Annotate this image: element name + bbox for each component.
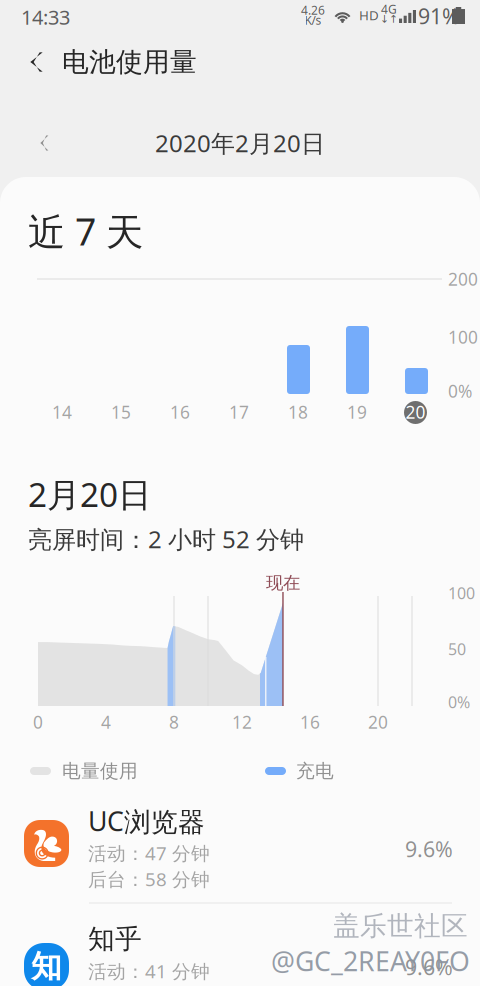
staticText: 后台：58 分钟 xyxy=(88,867,210,891)
staticText: 电量使用 xyxy=(62,759,138,782)
staticText: 12 xyxy=(232,710,252,733)
staticText: UC浏览器 xyxy=(88,803,205,839)
staticText: 9.6% xyxy=(405,953,453,981)
staticText: 近 7 天 xyxy=(28,206,143,256)
staticText: 亮屏时间：2 小时 52 分钟 xyxy=(28,523,304,555)
staticText: 现在 xyxy=(266,572,300,594)
button[interactable]: UC浏览器 xyxy=(0,805,480,905)
staticText: 50 xyxy=(448,638,466,660)
staticText: K/s xyxy=(304,12,321,28)
staticText: 0 xyxy=(33,710,43,733)
staticText: 活动：47 分钟 xyxy=(88,841,210,865)
staticText: 知乎 xyxy=(88,923,142,955)
staticText: 20 xyxy=(405,400,425,423)
staticText: 100 xyxy=(448,582,475,604)
staticText: 16 xyxy=(300,710,320,733)
staticText: HD xyxy=(359,6,379,24)
staticText: 2月20日 xyxy=(28,472,151,516)
staticText: 18 xyxy=(288,400,308,423)
staticText: ↓↑ xyxy=(380,13,398,25)
staticText: 电池使用量 xyxy=(62,46,197,78)
staticText: 4 xyxy=(101,710,111,733)
button[interactable]: 知 xyxy=(0,923,480,986)
staticText: 15 xyxy=(111,400,131,423)
button[interactable]: Previous day xyxy=(0,0,48,44)
staticText: 充电 xyxy=(296,759,334,782)
staticText: 活动：41 分钟 xyxy=(88,959,210,983)
staticText: 19 xyxy=(347,400,367,423)
staticText: @GC_2REAY0FO xyxy=(271,943,470,979)
staticText: 8 xyxy=(169,710,179,733)
staticText: 200 xyxy=(448,267,478,290)
staticText: 知 xyxy=(31,948,62,985)
staticText: 16 xyxy=(170,400,190,423)
staticText: 91% xyxy=(418,2,460,30)
staticText: 20 xyxy=(368,710,388,733)
staticText: 100 xyxy=(448,325,478,348)
staticText: 0% xyxy=(448,691,470,713)
staticText: 9.6% xyxy=(405,835,453,863)
staticText: 17 xyxy=(229,400,249,423)
staticText: 4G xyxy=(381,1,397,17)
staticText: 4.26 xyxy=(301,2,325,18)
button[interactable]: Back xyxy=(0,0,56,52)
staticText: 0% xyxy=(448,379,472,402)
staticText: 14:33 xyxy=(21,4,70,30)
staticText: 盖乐世社区 xyxy=(333,910,468,942)
staticText: 14 xyxy=(52,400,72,423)
staticText: 2020年2月20日 xyxy=(155,127,325,159)
